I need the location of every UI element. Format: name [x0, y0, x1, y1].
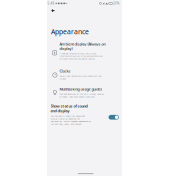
button[interactable]: Ambient display (Always-on display)	[47, 42, 122, 68]
staticText: You can easily check the sound and displ…	[50, 114, 90, 125]
staticText: Show status of sound and display	[50, 104, 87, 113]
staticText: 5:48	[48, 1, 55, 5]
button[interactable]: Multitasking usage guides	[47, 87, 122, 104]
staticText: Ambient display (Always-on display)	[59, 42, 105, 51]
button[interactable]: Show status of sound and display	[47, 104, 122, 132]
staticText: Multitasking usage guides	[59, 87, 102, 91]
staticText: Ambient display allows you to see inform…	[59, 52, 102, 60]
button[interactable]: Clocks	[47, 69, 122, 86]
button[interactable]: Back	[47, 6, 60, 15]
staticText: Clocks	[59, 69, 70, 73]
staticText: See explanations of the split screen, po…	[59, 92, 103, 98]
staticText: Appearance	[51, 27, 89, 36]
staticText: 20%	[113, 1, 119, 5]
staticText: Select your preferred clock shown on loc…	[59, 74, 101, 80]
